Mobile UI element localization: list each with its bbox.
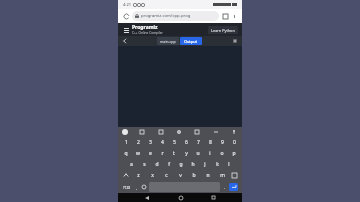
button[interactable]: 0 [228, 137, 240, 148]
staticText: Output [184, 39, 198, 44]
button[interactable]: Menu [122, 26, 130, 34]
button[interactable]: Gboard [122, 129, 128, 135]
button[interactable]: c [159, 170, 173, 181]
button[interactable]: f [163, 159, 175, 170]
staticText: ?123 [123, 185, 131, 190]
button[interactable]: t [168, 148, 180, 159]
button[interactable]: 7 [192, 137, 204, 148]
staticText: e [149, 150, 152, 157]
button[interactable]: x [145, 170, 159, 181]
button[interactable]: Learn Python [208, 26, 238, 34]
staticText: w [136, 150, 140, 157]
button[interactable]: r [156, 148, 168, 159]
button[interactable]: 6 [180, 137, 192, 148]
button[interactable]: Translate [193, 128, 201, 136]
staticText: z [137, 172, 140, 179]
staticText: n [206, 172, 210, 179]
button[interactable]: Recents [209, 193, 218, 202]
button[interactable]: Clipboard [138, 128, 146, 136]
button[interactable]: . [221, 182, 228, 192]
button[interactable]: ?123 [121, 182, 133, 192]
button[interactable]: Shift [120, 170, 131, 181]
button[interactable]: m [215, 170, 229, 181]
staticText: q [124, 150, 128, 157]
button[interactable]: g [175, 159, 187, 170]
button[interactable]: d [151, 159, 163, 170]
staticText: g [179, 161, 183, 168]
staticText: 6 [185, 139, 188, 146]
button[interactable]: 1 [120, 137, 132, 148]
button[interactable]: 8 [204, 137, 216, 148]
button[interactable]: j [199, 159, 211, 170]
staticText: 0 [233, 139, 236, 146]
button[interactable]: Backspace [229, 170, 240, 181]
staticText: c [165, 172, 168, 179]
staticText: . [224, 185, 226, 190]
button[interactable]: main.cpp [157, 37, 179, 45]
staticText: i [209, 150, 211, 157]
staticText: v [179, 172, 182, 179]
button[interactable]: y [180, 148, 192, 159]
button[interactable]: Enter [229, 183, 238, 191]
staticText: s [143, 161, 146, 168]
button[interactable]: a [125, 159, 138, 170]
button[interactable]: GIF [157, 128, 165, 136]
button[interactable]: Tabs [221, 12, 230, 21]
button[interactable]: Voice [230, 128, 238, 136]
button[interactable]: Settings [175, 128, 183, 136]
button[interactable]: Back [142, 193, 151, 202]
button[interactable]: programiz.com/cpp-prog [132, 11, 219, 21]
staticText: y [185, 150, 188, 157]
staticText: h [191, 161, 195, 168]
button[interactable]: k [211, 159, 223, 170]
button[interactable]: Back [121, 37, 129, 45]
staticText: m [220, 172, 225, 179]
button[interactable]: v [173, 170, 187, 181]
staticText: r [161, 150, 164, 157]
staticText: d [155, 161, 159, 168]
staticText: a [130, 161, 133, 168]
staticText: 1 [125, 139, 128, 146]
button[interactable]: h [187, 159, 199, 170]
button[interactable]: 3 [144, 137, 156, 148]
staticText: l [228, 161, 230, 168]
button[interactable]: e [144, 148, 156, 159]
button[interactable]: Reload [122, 12, 131, 21]
button[interactable]: More [212, 128, 220, 136]
button[interactable]: 4 [156, 137, 168, 148]
staticText: , [136, 185, 138, 190]
button[interactable]: More options [230, 12, 238, 20]
button[interactable]: s [138, 159, 151, 170]
staticText: x [151, 172, 154, 179]
button[interactable]: n [201, 170, 215, 181]
staticText: u [196, 150, 200, 157]
button[interactable]: 2 [132, 137, 144, 148]
staticText: 4 [161, 139, 164, 146]
staticText: t [173, 150, 175, 157]
button[interactable]: q [120, 148, 132, 159]
button[interactable]: , [133, 182, 140, 192]
button[interactable]: p [228, 148, 240, 159]
button[interactable]: Output [180, 37, 202, 45]
button[interactable]: l [223, 159, 235, 170]
button[interactable]: 9 [216, 137, 228, 148]
staticText: 4:21 [123, 2, 131, 7]
button[interactable]: i [204, 148, 216, 159]
button[interactable]: Settings [231, 37, 239, 45]
button[interactable]: b [187, 170, 201, 181]
staticText: C++ Online Compiler [132, 31, 163, 35]
staticText: k [216, 161, 219, 168]
button[interactable]: 5 [168, 137, 180, 148]
button[interactable]: Emoji [140, 182, 148, 192]
button[interactable]: o [216, 148, 228, 159]
button[interactable]: w [132, 148, 144, 159]
button[interactable]: z [131, 170, 145, 181]
staticText: 3 [149, 139, 152, 146]
button[interactable]: Home [176, 193, 185, 202]
staticText: programiz.com/cpp-prog [141, 13, 191, 19]
staticText: main.cpp [160, 39, 176, 44]
staticText: Programiz [132, 24, 158, 31]
staticText: 2 [137, 139, 140, 146]
button[interactable]: u [192, 148, 204, 159]
